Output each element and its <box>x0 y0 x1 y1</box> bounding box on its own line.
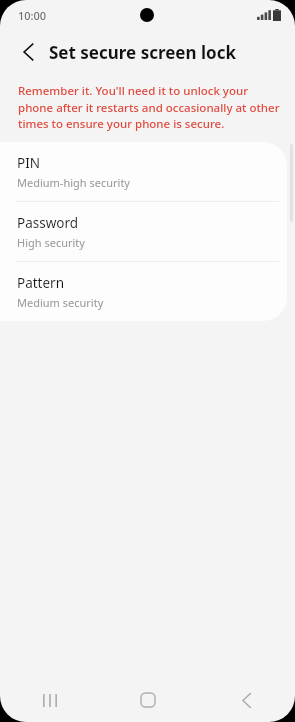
button[interactable]: Pattern <box>0 262 287 321</box>
staticText: Pattern <box>17 274 65 292</box>
staticText: Password <box>17 214 79 232</box>
staticText: 10:00 <box>18 8 47 23</box>
button[interactable]: Password <box>0 202 287 261</box>
staticText: Set secure screen lock <box>49 41 236 64</box>
button[interactable]: Recent apps <box>0 678 99 722</box>
button[interactable]: Home <box>99 678 197 722</box>
button[interactable]: Back <box>14 38 42 66</box>
staticText: High security <box>17 235 85 250</box>
staticText: Remember it. You'll need it to unlock yo… <box>18 83 281 131</box>
staticText: PIN <box>17 154 41 172</box>
button[interactable]: Back <box>197 678 295 722</box>
staticText: Medium security <box>17 295 104 310</box>
staticText: Medium-high security <box>17 175 130 190</box>
button[interactable]: PIN <box>0 142 287 201</box>
